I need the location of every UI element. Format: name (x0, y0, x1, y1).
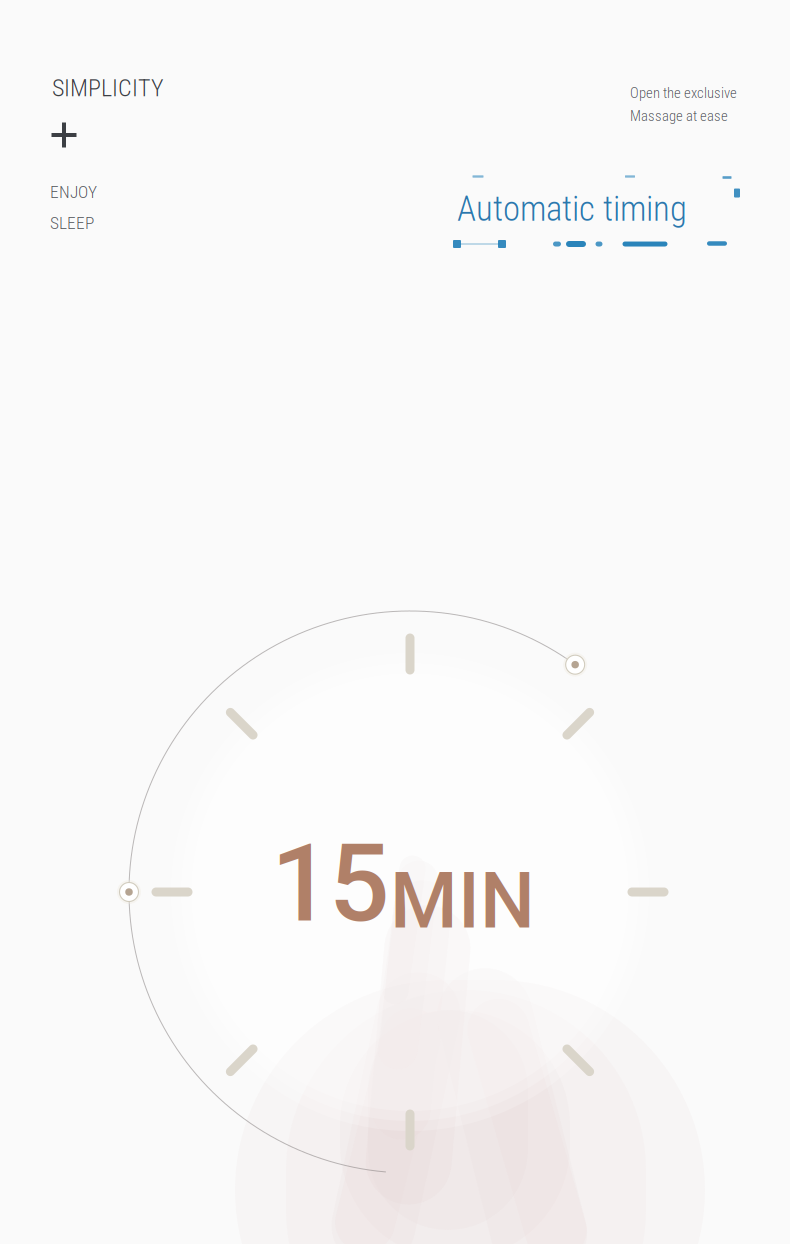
staticText: MIN (390, 856, 535, 946)
staticText: SLEEP (50, 213, 94, 233)
staticText: Massage at ease (630, 107, 728, 125)
staticText: 15 (271, 821, 390, 946)
staticText: Open the exclusive (630, 84, 737, 102)
staticText: Automatic timing (457, 189, 687, 229)
button[interactable]: Timer handle (114, 877, 144, 907)
staticText: ENJOY (50, 182, 97, 202)
staticText: SIMPLICITY (52, 74, 164, 102)
button[interactable]: Timer handle (560, 650, 590, 680)
